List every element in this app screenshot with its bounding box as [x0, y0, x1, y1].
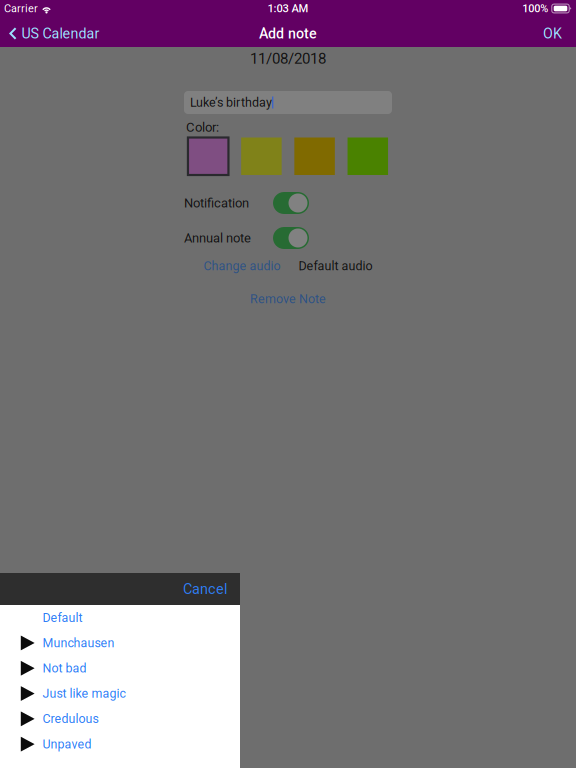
staticText: 11/08/2018: [250, 50, 326, 67]
staticText: Default: [42, 610, 82, 625]
staticText: Notification: [184, 195, 249, 211]
staticText: Default audio: [298, 259, 372, 273]
staticText: OK: [543, 25, 562, 42]
button[interactable]: US Calendar: [0, 20, 107, 47]
staticText: Color:: [186, 120, 219, 135]
button[interactable]: Default: [0, 605, 240, 630]
staticText: Carrier: [4, 2, 38, 15]
staticText: Remove Note: [250, 292, 326, 306]
button[interactable]: Credulous: [0, 706, 240, 731]
staticText: Cancel: [183, 581, 228, 597]
staticText: 100%: [522, 2, 548, 15]
button[interactable]: Cancel: [171, 573, 240, 605]
button[interactable]: Not bad: [0, 656, 240, 681]
button[interactable]: Unpaved: [0, 731, 240, 757]
button[interactable]: Notification: [273, 192, 309, 214]
button[interactable]: Colour swatch: [241, 137, 282, 175]
staticText: Annual note: [184, 230, 251, 246]
staticText: Munchausen: [42, 636, 114, 650]
staticText: Change audio: [203, 259, 280, 273]
button[interactable]: Remove Note: [250, 290, 326, 308]
staticText: Not bad: [42, 661, 86, 675]
button[interactable]: Change audio: [203, 257, 280, 275]
staticText: Add note: [259, 25, 317, 42]
staticText: Credulous: [42, 712, 98, 726]
staticText: Just like magic: [42, 686, 125, 701]
staticText: Luke’s birthday: [190, 95, 272, 110]
staticText: US Calendar: [21, 25, 99, 42]
button[interactable]: Munchausen: [0, 630, 240, 656]
staticText: Unpaved: [42, 737, 91, 751]
staticText: 1:03 AM: [267, 2, 308, 15]
button[interactable]: OK: [531, 20, 576, 47]
button[interactable]: Annual note: [273, 227, 309, 249]
button[interactable]: Colour swatch: [294, 137, 335, 175]
button[interactable]: Colour swatch: [188, 137, 228, 175]
button[interactable]: Just like magic: [0, 681, 240, 706]
